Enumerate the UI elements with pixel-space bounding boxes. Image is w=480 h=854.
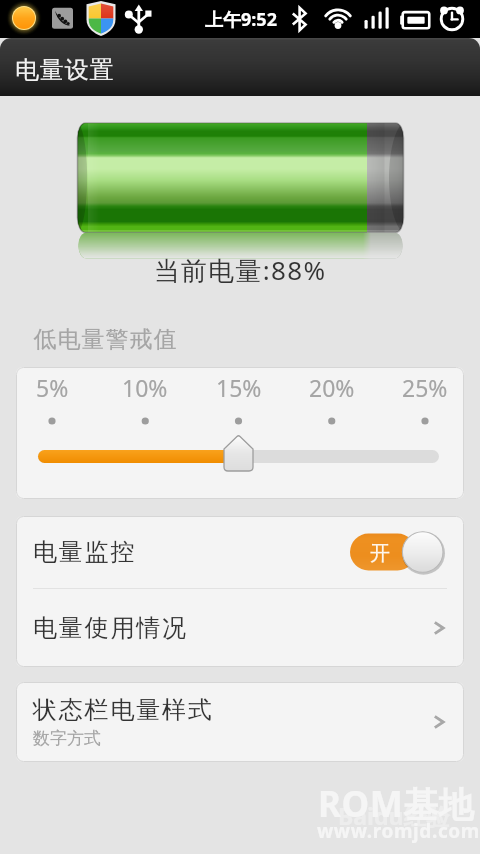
staticText: 数字方式 xyxy=(33,728,101,749)
staticText: 电量监控 xyxy=(33,537,137,567)
other: More xyxy=(432,617,446,639)
staticText: 15% xyxy=(216,372,262,403)
staticText: Baidu经验 xyxy=(338,800,450,831)
button[interactable]: 电量使用情况 xyxy=(16,589,464,667)
button[interactable]: 电量监控 xyxy=(16,516,464,588)
other: More xyxy=(432,711,446,733)
staticText: 当前电量:88% xyxy=(0,252,480,288)
staticText: 电量设置 xyxy=(15,55,115,85)
staticText: 电量使用情况 xyxy=(33,613,188,643)
staticText: www.romjd.com xyxy=(317,818,480,844)
staticText: 5% xyxy=(36,372,69,403)
staticText: 状态栏电量样式 xyxy=(33,695,214,725)
staticText: 10% xyxy=(122,372,168,403)
staticText: 上午9:52 xyxy=(205,7,277,32)
button[interactable]: 状态栏电量样式 xyxy=(16,682,464,762)
staticText: 20% xyxy=(309,372,355,403)
staticText: 低电量警戒值 xyxy=(33,325,177,354)
staticText: 开 xyxy=(370,541,390,566)
staticText: 25% xyxy=(402,372,448,403)
button[interactable]: 电量监控开关 xyxy=(350,531,446,573)
staticText: ROM基地 xyxy=(318,780,475,828)
